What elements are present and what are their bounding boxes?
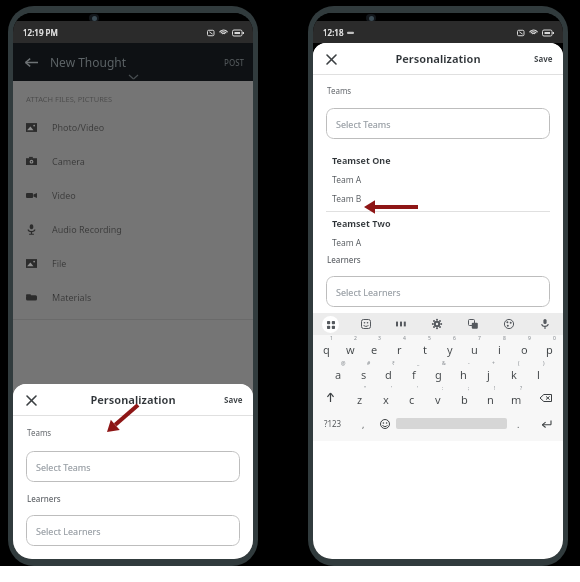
button[interactable]: Themes [491, 313, 527, 335]
button[interactable]: 7 [462, 335, 487, 360]
button[interactable]: Shift [313, 385, 347, 410]
staticText: ( [518, 360, 520, 367]
button[interactable]: Translate [455, 313, 491, 335]
button[interactable]: 1 [314, 335, 338, 360]
button[interactable]: Team A [313, 233, 563, 252]
staticText: l [537, 367, 540, 382]
staticText: w [346, 342, 355, 357]
button[interactable]: 8 [487, 335, 512, 360]
staticText: v [435, 392, 441, 407]
staticText: t [423, 342, 427, 357]
staticText: ; [468, 385, 470, 392]
button[interactable]: Close [322, 50, 340, 68]
staticText: n [487, 392, 494, 407]
button[interactable]: _ [401, 360, 426, 385]
staticText: 8 [503, 335, 506, 342]
button[interactable]: File [13, 246, 253, 280]
button[interactable]: ( [501, 360, 526, 385]
staticText: Team B [332, 193, 362, 205]
button[interactable]: Materials [13, 280, 253, 314]
button[interactable]: Enter [530, 410, 563, 437]
button[interactable]: Team B [313, 189, 563, 208]
button[interactable]: . [507, 410, 530, 437]
button[interactable]: 6 [437, 335, 462, 360]
staticText: Team A [332, 174, 362, 186]
button[interactable]: 5 [412, 335, 437, 360]
button[interactable]: & [426, 360, 451, 385]
button[interactable]: 9 [512, 335, 537, 360]
staticText: u [471, 342, 478, 357]
staticText: 5 [428, 335, 431, 342]
button[interactable]: Save [534, 53, 553, 64]
button[interactable]: ’ [373, 385, 399, 410]
staticText: Teamset One [332, 154, 391, 166]
button[interactable]: Settings [419, 313, 455, 335]
button[interactable]: + [476, 360, 501, 385]
staticText: h [460, 367, 467, 382]
staticText: f [412, 367, 416, 382]
button[interactable]: Select Learners [26, 515, 240, 546]
button[interactable]: Audio Recording [13, 212, 253, 246]
button[interactable]: Select Teams [26, 451, 240, 482]
staticText: k [511, 367, 517, 382]
button[interactable]: ) [526, 360, 551, 385]
button[interactable]: 2 [338, 335, 362, 360]
staticText: ) [543, 360, 545, 367]
button[interactable]: Backspace [529, 385, 563, 410]
staticText: m [511, 392, 522, 407]
button[interactable]: ? [503, 385, 529, 410]
staticText: ₹ [392, 360, 395, 367]
staticText: z [357, 392, 363, 407]
button[interactable]: Save [224, 394, 243, 405]
staticText: ?123 [324, 418, 342, 429]
button[interactable]: Keyboard modes [313, 313, 348, 335]
staticText: ATTACH FILES, PICTURES [26, 94, 113, 104]
staticText: x [383, 392, 389, 407]
button[interactable]: Camera [13, 144, 253, 178]
button[interactable]: Emoji [373, 410, 396, 437]
button[interactable]: “ [347, 385, 373, 410]
staticText: Select Learners [36, 525, 101, 537]
button[interactable]: POST [224, 57, 245, 68]
staticText: + [492, 360, 495, 367]
button[interactable]: 4 [387, 335, 412, 360]
button[interactable]: ?123 [313, 410, 353, 437]
button[interactable]: @ [325, 360, 351, 385]
button[interactable]: ₹ [376, 360, 401, 385]
button[interactable]: 3 [362, 335, 387, 360]
button[interactable]: # [351, 360, 376, 385]
button[interactable]: Close [22, 391, 40, 409]
staticText: @ [341, 360, 346, 367]
staticText: q [323, 342, 330, 357]
button[interactable]: Team A [313, 170, 563, 189]
staticText: Learners [27, 493, 61, 504]
staticText: . [517, 418, 520, 430]
staticText: Learners [327, 254, 361, 265]
staticText: , [362, 418, 365, 430]
staticText: s [361, 367, 367, 382]
button[interactable]: : [425, 385, 451, 410]
button[interactable]: Back [20, 51, 42, 73]
button[interactable]: Photo/Video [13, 110, 253, 144]
button[interactable]: Voice input [527, 313, 563, 335]
button[interactable]: ! [477, 385, 503, 410]
staticText: j [487, 367, 490, 382]
button[interactable]: Select Teams [326, 108, 550, 139]
staticText: # [367, 360, 371, 367]
button[interactable]: GIF [383, 313, 419, 335]
button[interactable]: Stickers [348, 313, 383, 335]
staticText: Photo/Video [52, 121, 105, 133]
button[interactable]: , [353, 410, 373, 437]
staticText: Teams [27, 427, 52, 438]
staticText: 12:18 [323, 27, 344, 38]
button[interactable]: ; [451, 385, 477, 410]
staticText: Select Learners [336, 286, 401, 298]
button[interactable]: Select Learners [326, 276, 550, 307]
button[interactable]: Video [13, 178, 253, 212]
staticText: y [447, 342, 453, 357]
staticText: - [468, 360, 470, 367]
button[interactable]: 0 [537, 335, 562, 360]
button[interactable]: - [451, 360, 476, 385]
button[interactable]: ‘ [399, 385, 425, 410]
